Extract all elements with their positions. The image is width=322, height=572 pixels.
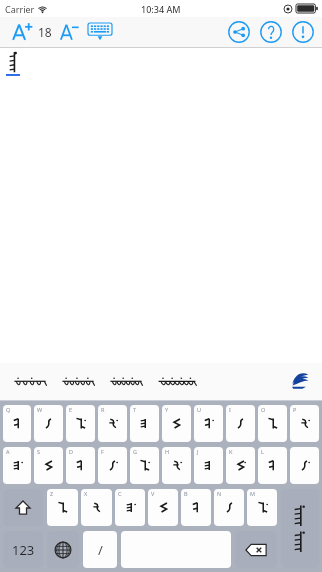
staticText: N bbox=[217, 490, 222, 497]
button[interactable]: Help bbox=[260, 21, 282, 43]
staticText: D bbox=[69, 448, 74, 455]
staticText: T bbox=[133, 406, 137, 413]
staticText: E bbox=[69, 406, 73, 413]
staticText: V bbox=[151, 490, 155, 497]
button[interactable]: K bbox=[226, 447, 255, 484]
staticText: S bbox=[37, 448, 41, 455]
staticText: O bbox=[261, 406, 266, 413]
button[interactable]: Z bbox=[47, 489, 78, 526]
button[interactable]: Shift bbox=[3, 489, 43, 526]
button[interactable]: H bbox=[162, 447, 191, 484]
staticText: W bbox=[37, 406, 43, 413]
staticText: R bbox=[101, 406, 105, 413]
button[interactable]: Keyboard settings bbox=[288, 370, 312, 394]
button[interactable]: B bbox=[181, 489, 211, 526]
button[interactable]: Suggestion 2 bbox=[54, 367, 102, 397]
button[interactable]: V bbox=[148, 489, 178, 526]
button[interactable]: Key bbox=[290, 447, 319, 484]
button[interactable]: Hide keyboard bbox=[86, 19, 114, 45]
button[interactable]: O bbox=[258, 405, 287, 442]
button[interactable]: M bbox=[247, 489, 277, 526]
button[interactable]: Increase font size bbox=[10, 19, 36, 45]
button[interactable]: U bbox=[194, 405, 223, 442]
staticText: 18 bbox=[38, 24, 52, 40]
button[interactable]: Return bbox=[281, 489, 319, 568]
button[interactable]: L bbox=[258, 447, 287, 484]
staticText: / bbox=[98, 541, 103, 559]
staticText: I bbox=[229, 406, 231, 413]
button[interactable]: X bbox=[81, 489, 112, 526]
staticText: G bbox=[133, 448, 138, 455]
staticText: U bbox=[197, 406, 202, 413]
button[interactable]: G bbox=[130, 447, 159, 484]
button[interactable]: I bbox=[226, 405, 255, 442]
button[interactable]: Suggestion 1 bbox=[6, 367, 54, 397]
staticText: A bbox=[6, 448, 10, 455]
staticText: Z bbox=[50, 490, 54, 497]
button[interactable]: Suggestion 4 bbox=[150, 367, 204, 397]
staticText: Carrier bbox=[5, 3, 35, 15]
button[interactable]: W bbox=[34, 405, 63, 442]
button[interactable]: Info bbox=[292, 21, 314, 43]
staticText: X bbox=[84, 490, 88, 497]
staticText: F bbox=[101, 448, 104, 455]
button[interactable]: C bbox=[115, 489, 145, 526]
staticText: K bbox=[229, 448, 233, 455]
button[interactable]: Suggestion 3 bbox=[102, 367, 150, 397]
button[interactable]: Y bbox=[162, 405, 191, 442]
staticText: M bbox=[250, 490, 255, 497]
button[interactable]: J bbox=[194, 447, 223, 484]
button[interactable]: N bbox=[214, 489, 244, 526]
staticText: Y bbox=[165, 406, 169, 413]
button[interactable]: Share bbox=[228, 21, 250, 43]
button[interactable]: P bbox=[290, 405, 319, 442]
button[interactable]: / bbox=[83, 531, 117, 568]
button[interactable]: R bbox=[98, 405, 127, 442]
button[interactable]: A bbox=[3, 447, 31, 484]
button[interactable]: E bbox=[66, 405, 95, 442]
button[interactable]: Q bbox=[3, 405, 31, 442]
button[interactable]: T bbox=[130, 405, 159, 442]
staticText: L bbox=[261, 448, 264, 455]
staticText: H bbox=[165, 448, 170, 455]
button[interactable]: S bbox=[34, 447, 63, 484]
button[interactable]: Change language bbox=[47, 531, 79, 568]
staticText: J bbox=[197, 448, 199, 455]
staticText: Q bbox=[6, 406, 11, 413]
staticText: 10:34 AM bbox=[141, 3, 181, 15]
staticText: 123 bbox=[12, 541, 35, 559]
staticText: B bbox=[184, 490, 188, 497]
staticText: C bbox=[118, 490, 122, 497]
button[interactable]: Backspace bbox=[235, 531, 277, 568]
button[interactable]: Decrease font size bbox=[58, 19, 82, 45]
button[interactable]: 123 bbox=[3, 531, 43, 568]
button[interactable]: D bbox=[66, 447, 95, 484]
button[interactable]: Space bbox=[121, 531, 231, 568]
staticText: P bbox=[293, 406, 297, 413]
button[interactable]: F bbox=[98, 447, 127, 484]
